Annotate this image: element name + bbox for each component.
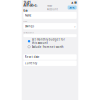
- staticText: Set monthly budget for this account: [32, 38, 65, 45]
- staticText: Name: [25, 14, 32, 17]
- staticText: New Account: [47, 4, 58, 11]
- staticText: Reset date: [25, 55, 40, 59]
- button[interactable]: Set monthly budget for this account: [23, 39, 77, 44]
- staticText: 9:41: [24, 0, 31, 5]
- staticText: ▲ ▮▮: [71, 1, 76, 4]
- staticText: Currency: [25, 61, 37, 65]
- staticText: ›: [74, 23, 75, 29]
- staticText: Alfabeta: [23, 2, 37, 13]
- staticText: Exclude from net worth: [32, 45, 64, 49]
- staticText: Starting balance: [23, 32, 34, 34]
- button[interactable]: Exclude from net worth: [23, 44, 77, 49]
- staticText: Save: [69, 6, 75, 9]
- staticText: Savings: [25, 24, 34, 28]
- staticText: Type: [23, 20, 27, 22]
- button[interactable]: Save: [68, 5, 77, 9]
